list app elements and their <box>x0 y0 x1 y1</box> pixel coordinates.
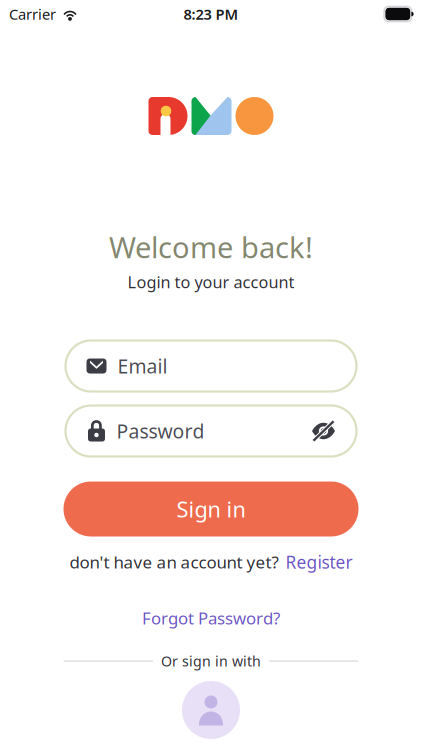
staticText: Carrier <box>9 4 56 24</box>
staticText: Login to your account <box>127 271 294 293</box>
button[interactable]: Email <box>65 340 356 391</box>
button[interactable]: Sign in <box>63 481 358 536</box>
button[interactable]: Forgot Password? <box>142 607 280 629</box>
staticText: Email <box>117 353 167 379</box>
staticText: Welcome back! <box>109 227 313 267</box>
button[interactable]: Register <box>285 550 352 574</box>
staticText: Forgot Password? <box>142 607 280 629</box>
staticText: Sign in <box>176 494 245 524</box>
button[interactable]: Sign in with account <box>182 681 240 739</box>
button[interactable]: Password <box>65 405 356 456</box>
staticText: don't have an account yet? <box>69 550 278 574</box>
staticText: Register <box>285 550 352 574</box>
staticText: 8:23 PM <box>183 4 238 24</box>
staticText: Or sign in with <box>161 651 261 671</box>
staticText: Password <box>116 418 204 444</box>
